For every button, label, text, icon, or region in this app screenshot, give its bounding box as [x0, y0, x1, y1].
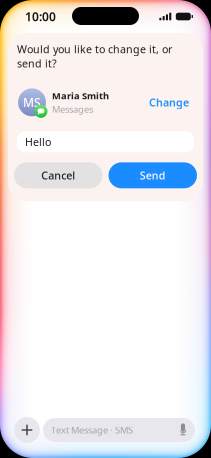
staticText: Messages [52, 103, 93, 115]
staticText: Send [140, 168, 166, 182]
staticText: Maria Smith [52, 89, 109, 102]
button[interactable]: Cancel [14, 162, 102, 188]
button[interactable]: Change [145, 90, 193, 114]
staticText: Change [149, 95, 189, 109]
button[interactable]: Add attachment [14, 417, 40, 443]
staticText: Hello [25, 135, 51, 149]
staticText: Cancel [41, 168, 75, 182]
staticText: Text Message · SMS [51, 424, 133, 436]
staticText: 10:00 [25, 8, 56, 24]
staticText: Would you like to change it, or send it? [17, 42, 172, 70]
button[interactable]: Dictate [176, 422, 190, 438]
button[interactable]: Send [108, 162, 197, 188]
staticText: MS [23, 94, 41, 110]
